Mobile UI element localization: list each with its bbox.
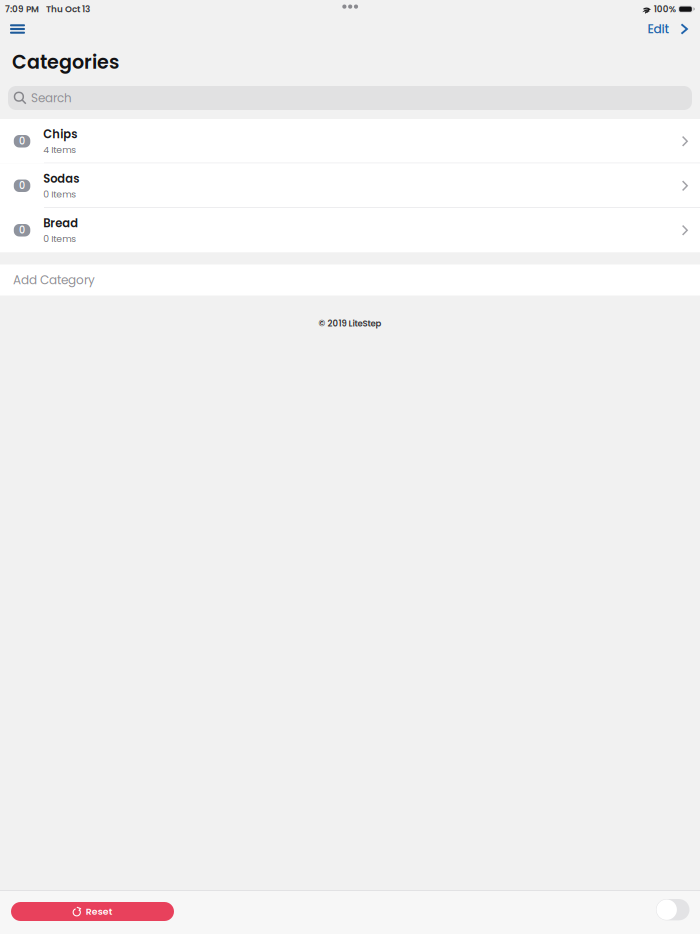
staticText: 4 Items xyxy=(43,143,76,156)
button[interactable]: Edit xyxy=(647,18,669,40)
staticText: Bread xyxy=(43,215,78,231)
button[interactable]: 0 xyxy=(0,208,700,252)
button[interactable]: 0 xyxy=(0,119,700,163)
button[interactable]: Forward xyxy=(669,18,700,40)
staticText: 0 xyxy=(19,179,25,192)
button[interactable]: Menu xyxy=(0,18,35,40)
staticText: Edit xyxy=(647,20,669,38)
button[interactable]: Toggle xyxy=(656,899,689,920)
staticText: 100% xyxy=(654,3,676,15)
staticText: Sodas xyxy=(43,171,79,187)
button[interactable]: Add Category xyxy=(0,264,700,295)
staticText: Thu Oct 13 xyxy=(46,3,90,15)
staticText: 0 xyxy=(19,223,25,237)
button[interactable]: 0 xyxy=(0,163,700,208)
staticText: 7:09 PM xyxy=(5,3,39,15)
staticText: Reset xyxy=(86,905,113,918)
staticText: 0 xyxy=(19,134,25,148)
staticText: Search xyxy=(31,90,72,106)
staticText: © 2019 LiteStep xyxy=(318,317,381,329)
staticText: 0 Items xyxy=(43,232,76,245)
staticText: Categories xyxy=(12,49,119,75)
staticText: 0 Items xyxy=(43,188,76,201)
staticText: Add Category xyxy=(13,272,95,288)
staticText: Chips xyxy=(43,126,77,142)
button[interactable]: Reset xyxy=(11,902,174,921)
